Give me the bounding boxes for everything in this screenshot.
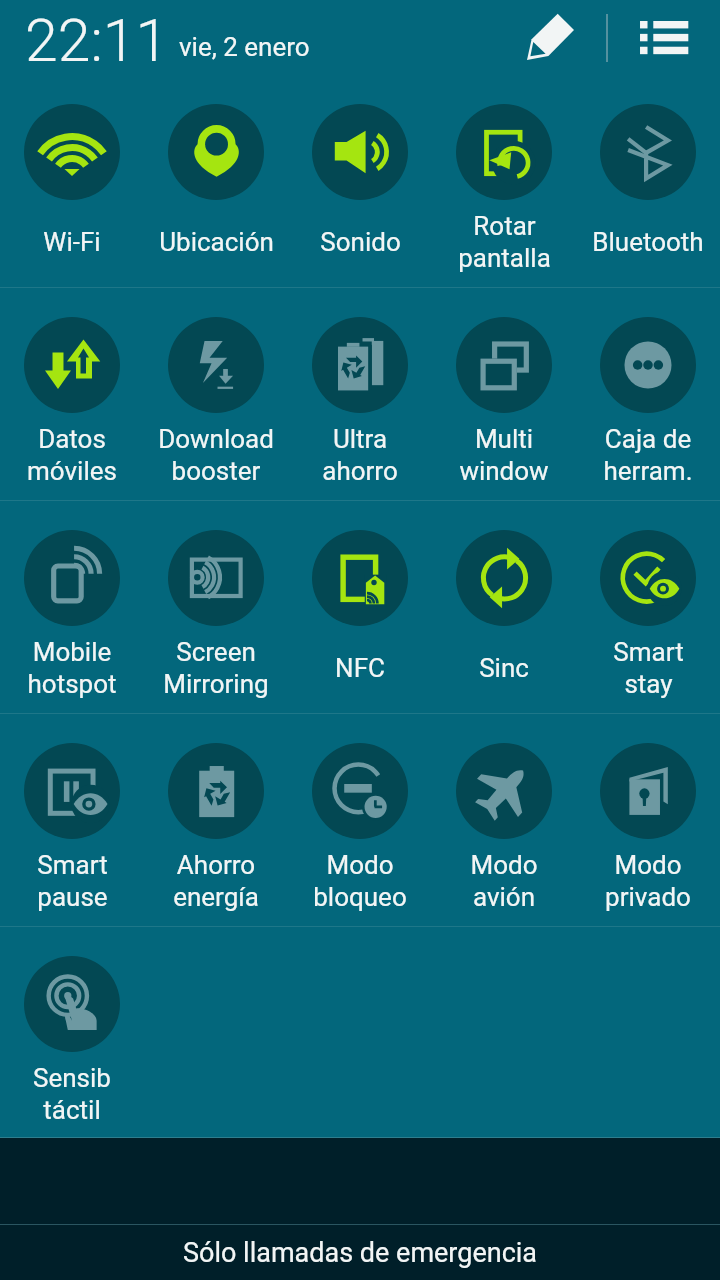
staticText: Caja de herram.: [603, 424, 693, 486]
button[interactable]: Multi window: [432, 288, 576, 500]
button[interactable]: Show all settings: [624, 0, 705, 75]
staticText: Multi window: [459, 424, 549, 486]
staticText: Modo bloqueo: [313, 850, 407, 912]
button[interactable]: Modo privado: [576, 714, 720, 926]
staticText: Sinc: [479, 653, 529, 683]
button[interactable]: Smart pause: [0, 714, 144, 926]
staticText: Ubicación: [159, 227, 274, 257]
staticText: Sensib táctil: [33, 1063, 111, 1125]
staticText: Ultra ahorro: [322, 424, 398, 486]
staticText: NFC: [335, 653, 385, 683]
button[interactable]: Datos móviles: [0, 288, 144, 500]
staticText: Ahorro energía: [173, 850, 259, 912]
staticText: 22:11: [25, 6, 169, 75]
button[interactable]: Bluetooth: [576, 75, 720, 287]
button[interactable]: Rotar pantalla: [432, 75, 576, 287]
staticText: Download booster: [158, 424, 274, 486]
button[interactable]: Modo avión: [432, 714, 576, 926]
staticText: Modo privado: [605, 850, 691, 912]
staticText: Wi-Fi: [43, 227, 101, 257]
button[interactable]: Ultra ahorro: [288, 288, 432, 500]
button[interactable]: Mobile hotspot: [0, 501, 144, 713]
button[interactable]: Smart stay: [576, 501, 720, 713]
button[interactable]: Ahorro energía: [144, 714, 288, 926]
staticText: Modo avión: [470, 850, 538, 912]
button[interactable]: Sensib táctil: [0, 927, 144, 1137]
staticText: Rotar pantalla: [458, 211, 551, 273]
staticText: Sólo llamadas de emergencia: [183, 1237, 538, 1269]
button[interactable]: Modo bloqueo: [288, 714, 432, 926]
button[interactable]: Download booster: [144, 288, 288, 500]
button[interactable]: Caja de herram.: [576, 288, 720, 500]
staticText: vie, 2 enero: [179, 32, 310, 62]
staticText: Smart pause: [37, 850, 108, 912]
staticText: Mobile hotspot: [27, 637, 117, 699]
button[interactable]: NFC: [288, 501, 432, 713]
staticText: Smart stay: [613, 637, 684, 699]
staticText: Bluetooth: [592, 227, 704, 257]
staticText: Screen Mirroring: [163, 637, 269, 699]
button[interactable]: Sonido: [288, 75, 432, 287]
button[interactable]: Screen Mirroring: [144, 501, 288, 713]
button[interactable]: Ubicación: [144, 75, 288, 287]
button[interactable]: Wi-Fi: [0, 75, 144, 287]
staticText: Datos móviles: [27, 424, 117, 486]
button[interactable]: Sinc: [432, 501, 576, 713]
button[interactable]: Edit quick settings: [510, 0, 622, 75]
staticText: Sonido: [320, 227, 401, 257]
